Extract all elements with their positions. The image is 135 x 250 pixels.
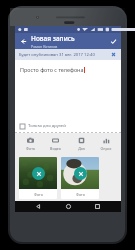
button[interactable]: Удалить фото [61,157,99,199]
staticText: Только для друзей [28,123,66,129]
staticText: Видео [50,146,61,151]
button[interactable]: Только для друзей [15,120,121,132]
staticText: Новая запись [31,34,75,43]
button[interactable]: Будет опубликован 31 авг. 2017 12:40 [15,49,121,60]
staticText: Фото [76,192,85,197]
staticText: Опрос [100,146,112,151]
button[interactable]: Назад [33,201,44,212]
button[interactable]: Опрос [95,133,117,155]
button[interactable]: Фото [19,133,41,155]
button[interactable]: Назад [15,33,31,49]
staticText: Будет опубликован 31 авг. 2017 12:40 [19,52,95,58]
button[interactable]: Док [70,133,92,155]
button[interactable]: Главный экран [63,201,74,212]
staticText: Док [78,146,85,151]
staticText: Роман Котиков [31,44,58,49]
button[interactable]: Видео [44,133,66,155]
button[interactable]: Отменить отложенную публикацию [108,49,119,60]
button[interactable]: Удалить фото [74,167,87,180]
staticText: Фото [34,192,43,197]
staticText: Фото [26,146,35,151]
button[interactable]: Отправить [105,33,121,49]
button[interactable]: Просто фото с телефона [20,66,121,73]
button[interactable]: Обзор [92,201,103,212]
button[interactable]: Удалить фото [19,157,57,199]
staticText: Просто фото с телефона [20,66,84,73]
button[interactable]: Удалить фото [32,167,45,180]
